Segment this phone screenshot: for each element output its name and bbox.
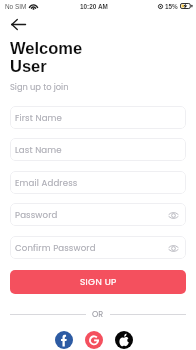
staticText: 10:20 AM: [80, 3, 108, 10]
button[interactable]: Sign up with Google: [85, 331, 103, 349]
button[interactable]: Show password: [166, 208, 180, 222]
button[interactable]: Sign up with Facebook: [55, 331, 73, 349]
staticText: Password: [15, 209, 58, 221]
staticText: First Name: [15, 112, 63, 124]
staticText: SIGN UP: [80, 276, 117, 289]
staticText: Sign up to join: [10, 81, 69, 93]
button[interactable]: First Name: [10, 106, 186, 129]
button[interactable]: Email Address: [10, 171, 186, 194]
staticText: 15%: [165, 3, 178, 10]
button[interactable]: Last Name: [10, 138, 186, 161]
button[interactable]: Back: [8, 14, 28, 34]
staticText: No SIM: [5, 3, 27, 10]
button[interactable]: Password: [10, 203, 186, 226]
button[interactable]: Show password: [166, 241, 180, 255]
button[interactable]: SIGN UP: [10, 270, 186, 294]
staticText: Confirm Password: [15, 242, 96, 254]
button[interactable]: Sign up with Apple: [115, 331, 133, 349]
staticText: OR: [92, 309, 104, 320]
button[interactable]: Confirm Password: [10, 236, 186, 259]
staticText: Last Name: [15, 144, 62, 156]
staticText: Email Address: [15, 177, 78, 189]
staticText: Welcome User: [10, 39, 83, 76]
